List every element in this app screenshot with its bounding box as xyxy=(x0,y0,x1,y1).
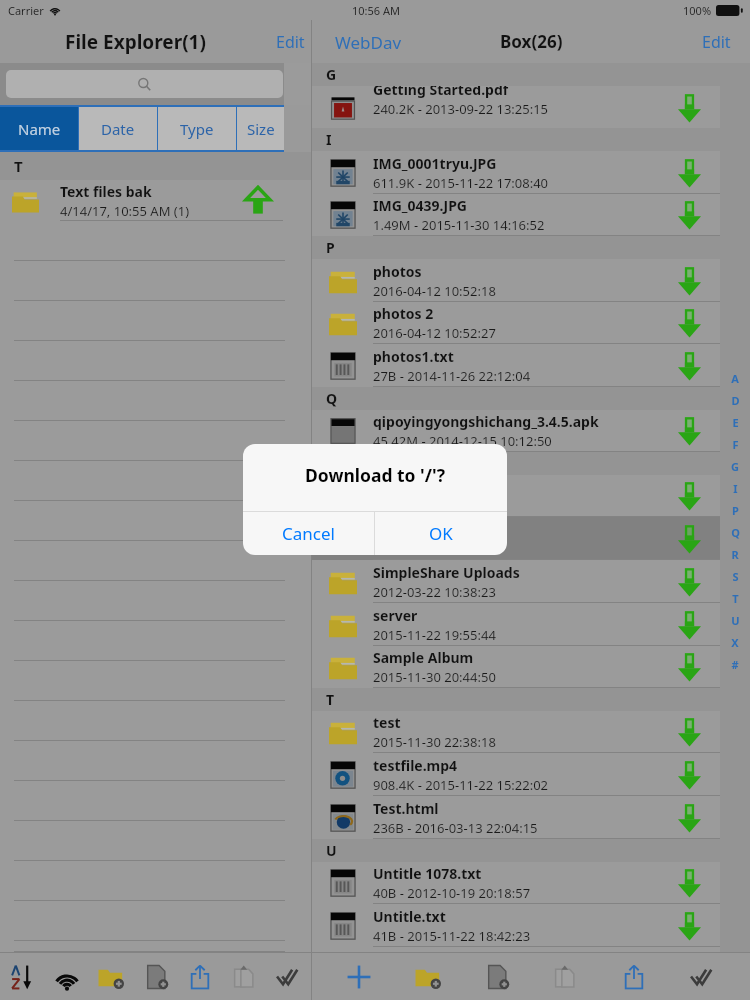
button[interactable]: testfile.mp4 xyxy=(312,753,720,796)
button[interactable]: Share xyxy=(612,955,656,999)
button[interactable]: Cancel xyxy=(243,512,374,555)
staticText: 27B - 2014-11-26 22:12:04 xyxy=(373,367,531,385)
staticText: photos1.txt xyxy=(373,347,454,366)
button[interactable]: Q xyxy=(721,521,749,543)
button[interactable]: server xyxy=(312,603,720,646)
button[interactable]: New folder xyxy=(89,955,133,999)
button[interactable]: Select all xyxy=(267,955,311,999)
staticText: 45.42M - 2014-12-15 10:12:50 xyxy=(373,432,552,450)
button[interactable]: Share xyxy=(178,955,222,999)
staticText: S xyxy=(732,569,739,584)
staticText: 41B - 2015-11-22 18:42:23 xyxy=(373,927,531,945)
staticText: 10:56 AM xyxy=(352,3,400,18)
staticText: P xyxy=(732,503,739,518)
staticText: S xyxy=(326,454,334,473)
button[interactable]: S xyxy=(721,565,749,587)
staticText: Sample Album xyxy=(373,648,474,667)
staticText: 1.49M - 2015-11-30 14:16:52 xyxy=(373,216,545,234)
button[interactable]: test xyxy=(312,710,720,753)
staticText: 2015-11-22 19:55:44 xyxy=(373,626,496,644)
staticText: Text files bak xyxy=(60,182,152,201)
button[interactable]: Wifi xyxy=(45,955,89,999)
button[interactable]: Test.html xyxy=(312,796,720,839)
button[interactable]: SimpleShare Uploads xyxy=(312,560,720,603)
button[interactable]: New file xyxy=(475,955,519,999)
staticText: server xyxy=(373,606,418,625)
staticText: 2016-03-01 11:56:26 xyxy=(373,540,496,558)
button[interactable]: R xyxy=(721,543,749,565)
button[interactable]: Size xyxy=(237,105,284,152)
staticText: testfile.mp4 xyxy=(373,756,458,775)
button[interactable]: Untitle 1078.txt xyxy=(312,861,720,904)
staticText: 40B - 2012-10-19 20:18:57 xyxy=(373,884,531,902)
button[interactable]: WebDav xyxy=(312,20,416,63)
staticText: IMG_0001tryu.JPG xyxy=(373,154,497,173)
staticText: photos 2 xyxy=(373,304,434,323)
staticText: G xyxy=(326,65,337,84)
staticText: Date xyxy=(101,119,135,139)
button[interactable]: X xyxy=(721,631,749,653)
staticText: Untitle.txt xyxy=(373,907,446,926)
button[interactable]: I xyxy=(721,477,749,499)
staticText: 240.2K - 2013-09-22 13:25:15 xyxy=(373,100,549,118)
button[interactable]: Sort xyxy=(0,955,44,999)
button[interactable]: Screen Shot 2016 xyxy=(312,474,720,517)
button[interactable]: IMG_0001tryu.JPG xyxy=(312,151,720,194)
button[interactable]: U xyxy=(721,609,749,631)
staticText: Edit xyxy=(276,31,305,52)
staticText: # xyxy=(731,657,739,672)
staticText: Screenshots xyxy=(373,520,458,539)
staticText: Name xyxy=(18,119,61,139)
button[interactable]: Edit xyxy=(263,20,311,63)
staticText: Size xyxy=(247,119,275,139)
staticText: 2016-03-01 11:56:26 xyxy=(373,497,496,515)
button[interactable]: Date xyxy=(79,105,157,152)
staticText: 100% xyxy=(683,3,712,18)
button[interactable]: Untitle.txt xyxy=(312,904,720,947)
button[interactable]: T xyxy=(721,587,749,609)
button[interactable]: P xyxy=(721,499,749,521)
staticText: X xyxy=(731,635,739,650)
button[interactable]: Getting Started.pdf xyxy=(312,86,720,129)
button[interactable]: F xyxy=(721,433,749,455)
button[interactable]: photos 2 xyxy=(312,301,720,344)
staticText: Cancel xyxy=(282,522,335,545)
button[interactable]: photos1.txt xyxy=(312,344,720,387)
staticText: Download to '/'? xyxy=(305,463,445,487)
staticText: G xyxy=(326,65,337,84)
button[interactable]: Type xyxy=(158,105,236,152)
button[interactable] xyxy=(6,70,283,98)
button[interactable]: OK xyxy=(375,512,507,555)
button[interactable]: IMG_0439.JPG xyxy=(312,193,720,236)
button[interactable]: qipoyingyongshichang_3.4.5.apk xyxy=(312,409,720,452)
button[interactable]: Paste xyxy=(543,955,587,999)
button[interactable]: Select all xyxy=(681,955,725,999)
button[interactable]: # xyxy=(721,653,749,675)
staticText: Q xyxy=(326,389,338,408)
staticText: 2012-03-22 10:38:23 xyxy=(373,583,496,601)
staticText: T xyxy=(732,591,739,606)
button[interactable]: Text files bak xyxy=(0,180,311,221)
staticText: D xyxy=(731,393,740,408)
button[interactable]: New folder xyxy=(406,955,450,999)
staticText: P xyxy=(326,238,335,257)
staticText: 611.9K - 2015-11-22 17:08:40 xyxy=(373,174,549,192)
button[interactable]: Name xyxy=(0,105,78,152)
button[interactable]: Screenshots xyxy=(312,517,720,560)
button[interactable]: Add xyxy=(337,955,381,999)
button[interactable]: Sample Album xyxy=(312,645,720,688)
staticText: IMG_0439.JPG xyxy=(373,196,467,215)
button[interactable]: Edit xyxy=(688,20,750,63)
button[interactable]: A xyxy=(721,367,749,389)
button[interactable]: G xyxy=(721,455,749,477)
button[interactable]: New file xyxy=(134,955,178,999)
button[interactable]: Paste xyxy=(222,955,266,999)
staticText: 2015-11-30 20:44:50 xyxy=(373,668,496,686)
button[interactable]: E xyxy=(721,411,749,433)
staticText: R xyxy=(731,547,739,562)
staticText: 2016-04-12 10:52:27 xyxy=(373,324,496,342)
staticText: photos xyxy=(373,262,422,281)
button[interactable]: D xyxy=(721,389,749,411)
staticText: SimpleShare Uploads xyxy=(373,563,520,582)
button[interactable]: photos xyxy=(312,259,720,302)
